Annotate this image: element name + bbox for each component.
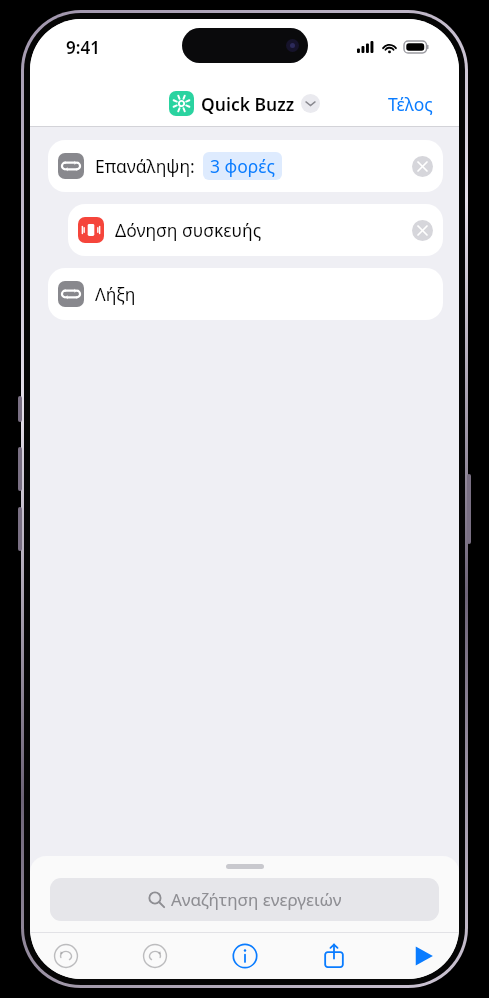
other: Show shortcut options bbox=[301, 94, 320, 113]
staticText: Αναζήτηση ενεργειών bbox=[171, 888, 342, 911]
staticText: 9:41 bbox=[66, 36, 100, 59]
button[interactable]: Αναζήτηση ενεργειών bbox=[50, 878, 439, 921]
button[interactable]: Remove action bbox=[412, 156, 433, 177]
button[interactable]: Remove action bbox=[412, 220, 433, 241]
button[interactable]: Undo bbox=[44, 934, 88, 978]
staticText: Λήξη bbox=[95, 282, 136, 306]
staticText: Επανάληψη: bbox=[95, 154, 195, 178]
staticText: Δόνηση συσκευής bbox=[115, 218, 262, 242]
button[interactable]: Δόνηση συσκευής bbox=[68, 204, 443, 256]
button[interactable]: 3 φορές bbox=[203, 152, 282, 180]
button[interactable]: Τέλος bbox=[362, 84, 459, 124]
button[interactable]: Redo bbox=[133, 934, 177, 978]
button[interactable]: Run shortcut bbox=[401, 934, 445, 978]
staticText: Τέλος bbox=[388, 92, 433, 116]
button[interactable]: Share bbox=[312, 934, 356, 978]
staticText: Quick Buzz bbox=[201, 92, 295, 116]
button[interactable]: Επανάληψη: bbox=[48, 140, 443, 192]
staticText: 3 φορές bbox=[210, 154, 275, 178]
button[interactable]: Info bbox=[223, 934, 267, 978]
button[interactable]: Quick Buzz bbox=[169, 91, 320, 116]
button[interactable]: Λήξη bbox=[48, 268, 443, 320]
